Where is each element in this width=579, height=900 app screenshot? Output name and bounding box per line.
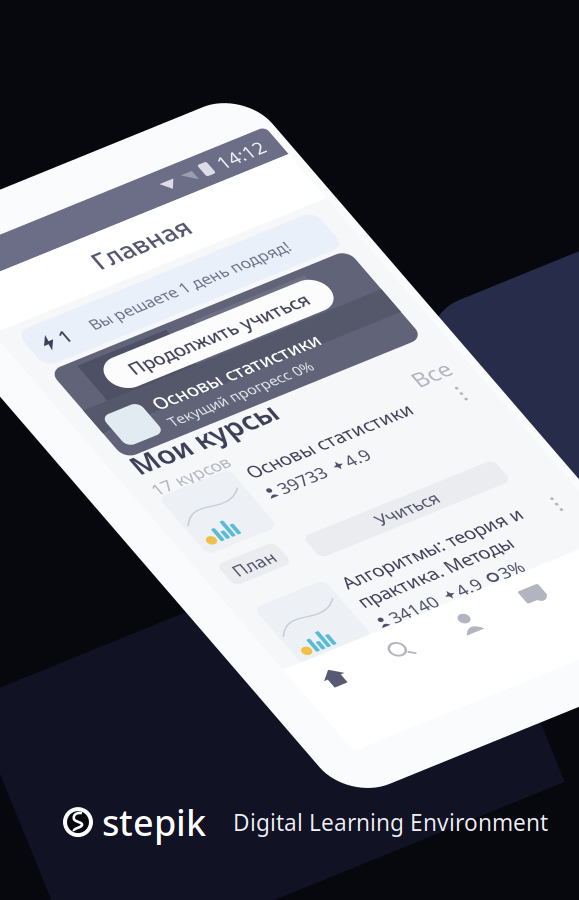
button[interactable]: Сертификаты (254, 582, 326, 638)
staticText: 17 курсов (57, 344, 139, 367)
button[interactable]: Учиться (145, 606, 351, 634)
staticText: Текущий прогресс 0% (117, 285, 271, 305)
staticText: Главная (167, 92, 269, 126)
staticText: 4.9 (231, 393, 256, 416)
staticText: Вы решаете 1 день подряд! (121, 158, 335, 180)
staticText: Мои курсы (57, 306, 211, 343)
staticText: stepik (102, 798, 206, 846)
staticText: Основы статистики (117, 260, 295, 284)
button[interactable]: План (57, 453, 119, 481)
staticText: Основы статистики (145, 364, 321, 389)
button[interactable]: Ещё (363, 510, 379, 544)
staticText: 4.9 (231, 564, 256, 587)
staticText: Продолжить учиться (122, 216, 314, 240)
button[interactable]: Все (341, 337, 379, 367)
button[interactable]: Уведомления (326, 582, 398, 638)
staticText: Digital Learning Environment (233, 807, 548, 837)
staticText: План (66, 455, 110, 478)
button[interactable]: Поиск (110, 582, 182, 638)
staticText: Учиться (215, 462, 281, 485)
staticText: 39733 (159, 393, 209, 416)
staticText: Алгоритмы: теория и практика. Методы (145, 510, 337, 560)
staticText: 34140 (159, 564, 209, 587)
button[interactable]: Учиться (145, 460, 351, 488)
staticText: Учиться (215, 608, 281, 631)
button[interactable]: Профиль (182, 582, 254, 638)
staticText: Все (341, 337, 379, 367)
button[interactable]: Продолжить учиться (98, 209, 338, 247)
